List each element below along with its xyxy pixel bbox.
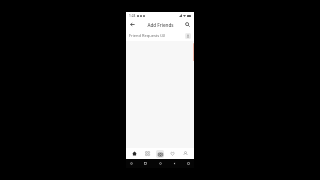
button[interactable]: Search xyxy=(183,20,192,29)
button[interactable]: Home xyxy=(130,149,139,158)
button[interactable]: Discover xyxy=(143,149,152,158)
staticText: Add Friends xyxy=(147,22,174,28)
button[interactable]: Back xyxy=(128,20,137,29)
staticText: 1:24 xyxy=(129,14,136,18)
button[interactable]: Screenshot xyxy=(128,160,135,167)
button[interactable]: Activity xyxy=(168,149,177,158)
button[interactable]: Friend Requests (4) xyxy=(126,30,194,41)
button[interactable]: Menu xyxy=(185,160,192,167)
button[interactable]: Home xyxy=(157,160,164,167)
button[interactable]: Profile xyxy=(181,149,190,158)
button[interactable]: Requests xyxy=(185,33,191,39)
button[interactable]: Back xyxy=(171,160,178,167)
staticText: Friend Requests (4) xyxy=(129,33,165,38)
button[interactable]: Recents xyxy=(142,160,149,167)
button[interactable]: Camera xyxy=(156,150,164,158)
